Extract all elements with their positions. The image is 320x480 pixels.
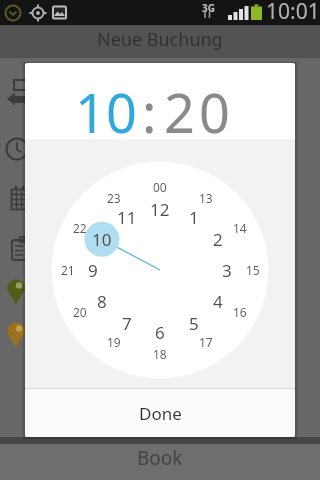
staticText: Done <box>139 402 182 425</box>
staticText: Book <box>137 445 183 471</box>
staticText: 16 <box>233 304 247 320</box>
staticText: 21 <box>61 262 75 278</box>
staticText: 23 <box>107 190 121 206</box>
staticText: 8 <box>97 290 107 313</box>
staticText: 3 <box>222 259 232 282</box>
staticText: 12 <box>150 198 170 221</box>
staticText: 10 <box>92 228 112 251</box>
staticText: 2 <box>213 228 223 251</box>
staticText: 20 <box>73 304 87 320</box>
staticText: 22 <box>73 220 87 236</box>
staticText: 13 <box>199 190 213 206</box>
staticText: 5 <box>189 312 199 335</box>
staticText: 11 <box>117 206 137 229</box>
staticText: : <box>142 75 157 149</box>
button[interactable]: Book <box>0 444 320 480</box>
button[interactable]: Done <box>25 389 295 437</box>
staticText: 20 <box>164 75 234 149</box>
staticText: 17 <box>199 334 213 350</box>
staticText: 15 <box>246 262 260 278</box>
staticText: 10 <box>75 75 137 149</box>
staticText: 10:01 <box>266 0 320 22</box>
staticText: 14 <box>233 220 247 236</box>
staticText: 7 <box>122 312 132 335</box>
staticText: 3G <box>202 1 215 15</box>
staticText: 1 <box>189 206 199 229</box>
staticText: 4 <box>213 290 223 313</box>
staticText: Neue Buchung <box>97 27 223 52</box>
staticText: 6 <box>155 321 165 344</box>
staticText: 00 <box>153 179 167 195</box>
staticText: 9 <box>88 259 98 282</box>
staticText: 19 <box>107 334 121 350</box>
staticText: 18 <box>153 346 167 362</box>
